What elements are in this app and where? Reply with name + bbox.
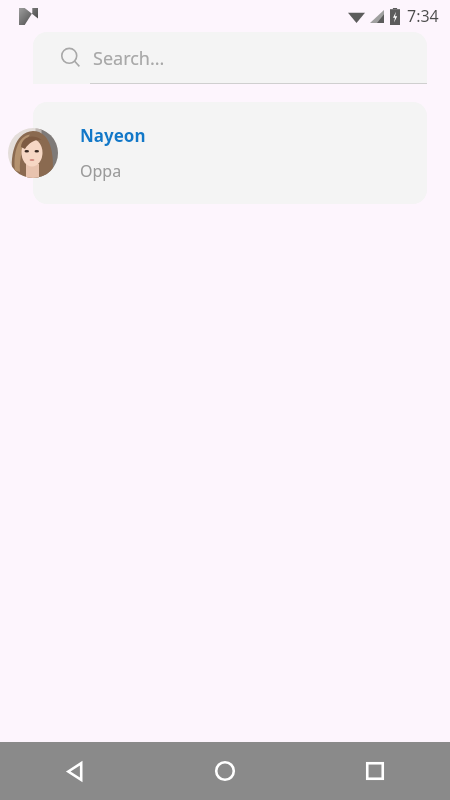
button[interactable]: Home xyxy=(150,742,300,800)
staticText: Search... xyxy=(93,46,165,71)
button[interactable]: Recent apps xyxy=(300,742,450,800)
button[interactable]: Search... xyxy=(33,32,427,84)
button[interactable]: Nayeon profile photo xyxy=(8,128,58,178)
button[interactable]: Back xyxy=(0,742,150,800)
staticText: Nayeon xyxy=(80,124,146,147)
staticText: 7:34 xyxy=(407,5,439,27)
button[interactable]: Nayeon xyxy=(33,102,427,204)
staticText: Oppa xyxy=(80,160,122,182)
